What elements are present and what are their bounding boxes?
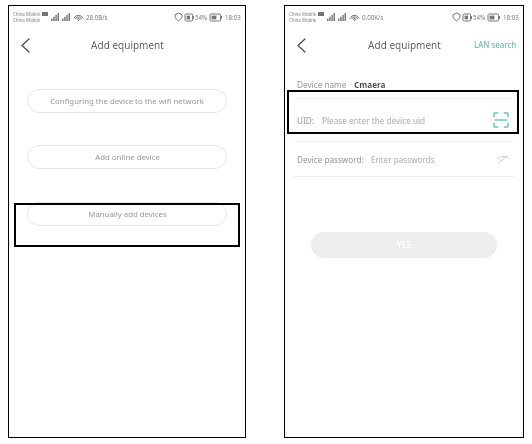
staticText: 0.00K/s <box>362 13 384 21</box>
staticText: UID: <box>297 115 314 126</box>
staticText: Add equipment <box>91 38 164 52</box>
staticText: China Mobile <box>13 11 41 17</box>
button[interactable]: UID: <box>284 99 524 141</box>
button[interactable]: Device name <box>284 70 524 98</box>
staticText: China Mobile <box>289 17 317 23</box>
button[interactable]: YES <box>311 232 497 258</box>
button[interactable]: Add online device <box>27 145 227 169</box>
button[interactable]: Back <box>11 31 39 59</box>
staticText: Add online device <box>95 152 160 163</box>
staticText: 18:03 <box>225 13 241 21</box>
button[interactable]: Manually add devices <box>27 202 227 226</box>
staticText: Please enter the device uid <box>322 115 426 126</box>
staticText: 54% <box>473 13 486 21</box>
button[interactable]: Scan QR code <box>491 110 511 130</box>
staticText: Cmaera <box>354 79 386 90</box>
staticText: 54% <box>195 13 208 21</box>
staticText: China Mobile <box>289 11 317 17</box>
staticText: 18:03 <box>503 13 519 21</box>
staticText: LAN search <box>474 39 517 50</box>
staticText: Device name <box>297 79 347 90</box>
staticText: China Mobile <box>13 17 41 23</box>
button[interactable]: Configuring the device to the wifi netwo… <box>27 89 227 113</box>
button[interactable]: LAN search <box>467 33 524 56</box>
staticText: 28.0B/s <box>86 13 108 21</box>
staticText: Add equipment <box>368 38 441 52</box>
staticText: Device password: <box>297 154 364 165</box>
staticText: Configuring the device to the wifi netwo… <box>50 96 204 107</box>
staticText: Enter passwords <box>371 154 435 165</box>
staticText: YES <box>397 239 412 251</box>
button[interactable]: Device password: <box>284 142 524 176</box>
staticText: Manually add devices <box>88 209 167 220</box>
button[interactable]: Back <box>287 31 315 59</box>
button[interactable]: Show password <box>495 151 511 167</box>
